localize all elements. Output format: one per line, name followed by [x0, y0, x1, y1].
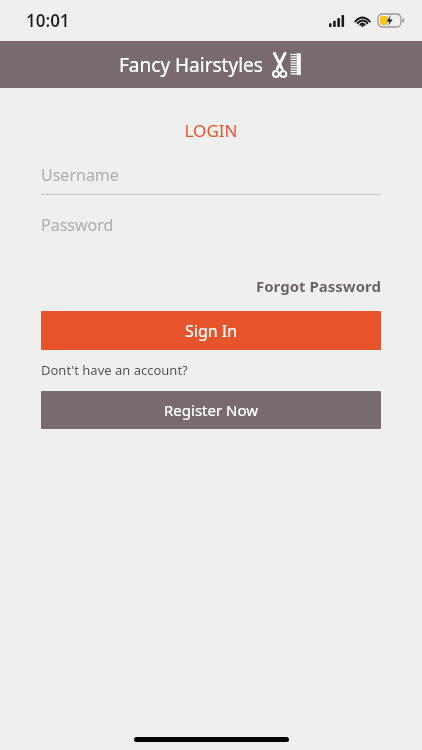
button[interactable]: Sign In [41, 311, 381, 350]
button[interactable]: Username [41, 164, 381, 195]
staticText: Sign In [185, 320, 238, 342]
staticText: Fancy Hairstyles [119, 52, 263, 78]
other: Battery charging [378, 14, 404, 27]
staticText: Username [41, 164, 119, 186]
button[interactable]: Register Now [41, 391, 381, 429]
button[interactable]: Forgot Password [256, 276, 381, 296]
button[interactable]: Password [41, 214, 381, 245]
staticText: Password [41, 214, 114, 236]
staticText: LOGIN [41, 119, 381, 142]
staticText: Dont't have an account? [41, 361, 188, 379]
staticText: Register Now [164, 400, 259, 420]
staticText: 10:01 [26, 9, 70, 32]
other: Hairstyling [272, 51, 304, 79]
